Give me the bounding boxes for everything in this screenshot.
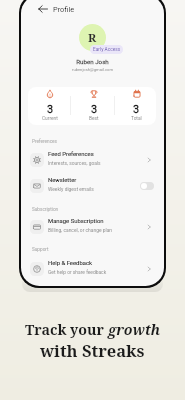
- button[interactable]: Help & Feedback: [28, 260, 156, 277]
- staticText: 3: [47, 103, 54, 116]
- staticText: Manage Subscription: [48, 218, 104, 225]
- button[interactable]: Newsletter toggle: [140, 182, 154, 190]
- staticText: R: [88, 30, 97, 46]
- staticText: 3: [91, 103, 98, 116]
- staticText: Best: [89, 116, 99, 122]
- button[interactable]: Newsletter: [28, 177, 156, 194]
- staticText: Newsletter: [48, 177, 77, 184]
- staticText: Total: [131, 116, 142, 122]
- staticText: Weekly digest emails: [48, 186, 94, 192]
- staticText: Feed Preferences: [48, 151, 94, 158]
- staticText: Subscription: [32, 207, 59, 213]
- staticText: Current: [42, 116, 58, 122]
- staticText: with Streaks: [40, 339, 145, 361]
- button[interactable]: Manage Subscription: [28, 218, 156, 235]
- staticText: Track your: [25, 320, 108, 339]
- staticText: Ruben Josh: [76, 58, 109, 65]
- button[interactable]: Feed Preferences: [28, 151, 156, 168]
- staticText: Interests, sources, goals: [48, 160, 101, 166]
- button[interactable]: 3: [76, 88, 112, 122]
- button[interactable]: 3: [118, 88, 154, 122]
- staticText: Early Access: [93, 47, 121, 53]
- staticText: rubenjosh@gmail.com: [72, 67, 113, 72]
- staticText: 3: [133, 103, 140, 116]
- button[interactable]: 3: [32, 88, 68, 122]
- staticText: Get help or share feedback: [48, 269, 107, 275]
- staticText: Profile: [53, 5, 75, 14]
- staticText: Help & Feedback: [48, 260, 92, 267]
- button[interactable]: Back: [38, 4, 48, 14]
- staticText: Billing, cancel, or change plan: [48, 227, 112, 233]
- staticText: Support: [32, 247, 49, 253]
- staticText: growth: [108, 320, 161, 339]
- staticText: Preferences: [32, 139, 58, 145]
